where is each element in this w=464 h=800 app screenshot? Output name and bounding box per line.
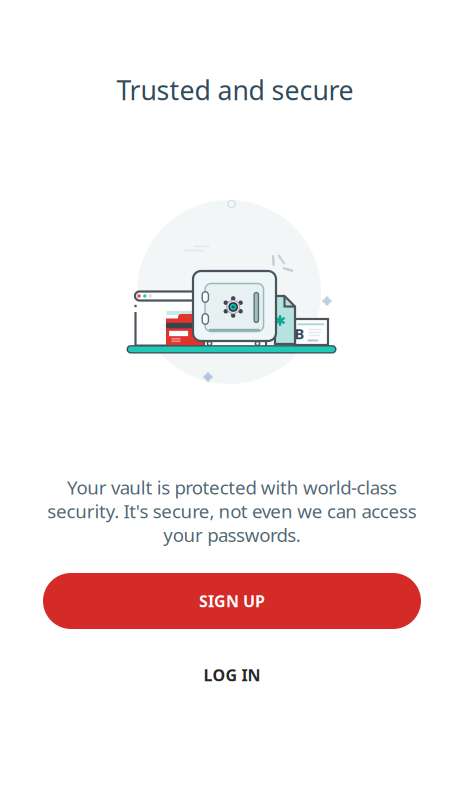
staticText: B (294, 324, 304, 343)
button[interactable]: LOG IN (152, 655, 312, 695)
staticText: SIGN UP (199, 590, 265, 612)
staticText: Trusted and secure (116, 72, 353, 108)
staticText: your passwords. (163, 522, 301, 547)
staticText: LOG IN (203, 664, 260, 686)
staticText: Your vault is protected with world-class (67, 475, 397, 500)
staticText: security. It's secure, not even we can a… (47, 499, 417, 523)
button[interactable]: SIGN UP (43, 573, 421, 629)
